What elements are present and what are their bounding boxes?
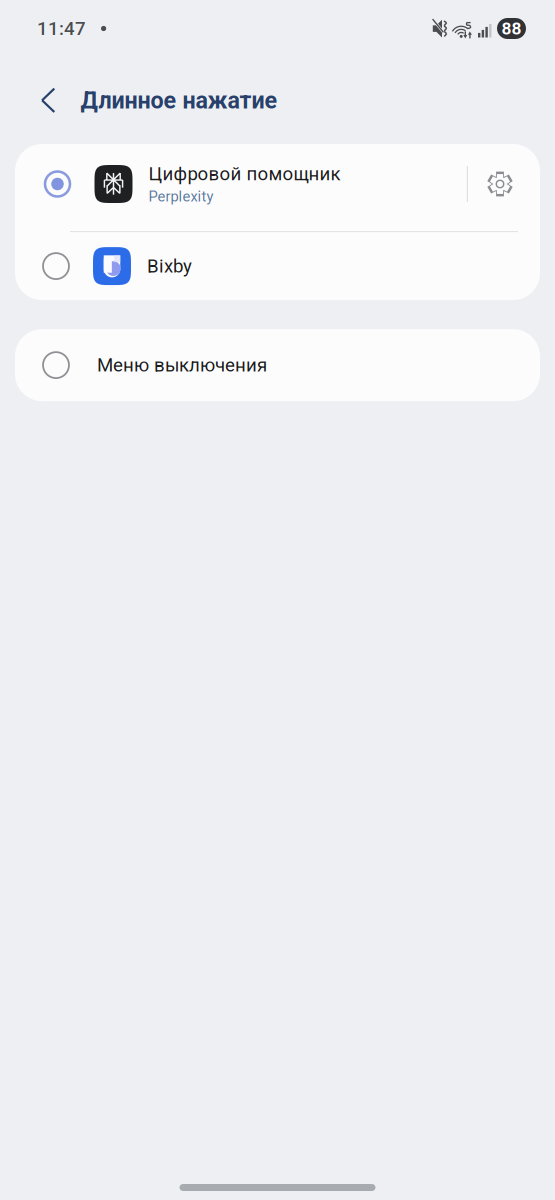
staticText: Длинное нажатие bbox=[80, 87, 277, 114]
staticText: 88 bbox=[501, 18, 521, 39]
staticText: 11:47 bbox=[37, 18, 86, 39]
staticText: Меню выключения bbox=[97, 354, 267, 376]
staticText: Цифровой помощник bbox=[148, 163, 340, 185]
button[interactable]: Bixby bbox=[15, 232, 540, 300]
button[interactable]: Меню выключения bbox=[0, 329, 555, 401]
button[interactable]: Back bbox=[26, 72, 71, 128]
staticText: Perplexity bbox=[148, 188, 213, 205]
staticText: Bixby bbox=[147, 255, 192, 277]
button[interactable]: Цифровой помощник bbox=[15, 144, 540, 231]
